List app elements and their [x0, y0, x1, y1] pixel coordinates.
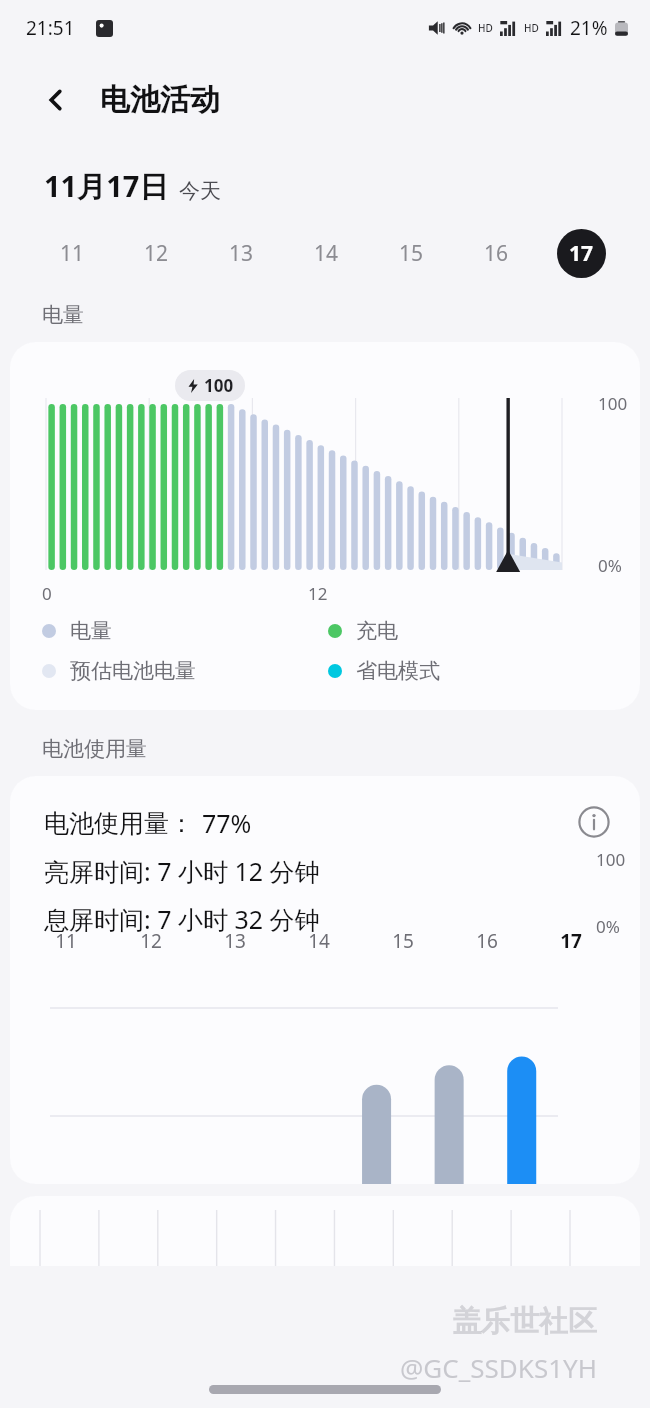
- button[interactable]: 信息: [570, 798, 618, 846]
- staticText: 电池使用量：: [44, 808, 194, 839]
- staticText: 77%: [202, 806, 252, 840]
- staticText: @GC_SSDKS1YH: [400, 1350, 598, 1385]
- staticText: 13: [229, 239, 254, 268]
- button[interactable]: 返回: [34, 78, 78, 122]
- staticText: 0%: [596, 915, 620, 938]
- staticText: 0%: [598, 554, 622, 577]
- button[interactable]: 17: [539, 226, 624, 280]
- staticText: 17: [569, 239, 594, 268]
- button[interactable]: 11: [30, 226, 114, 280]
- staticText: 11月17日: [44, 166, 169, 206]
- staticText: 今天: [179, 178, 221, 204]
- staticText: 14: [308, 928, 330, 954]
- staticText: 100: [596, 848, 626, 871]
- staticText: 电池使用量: [42, 736, 147, 762]
- staticText: 12: [140, 928, 162, 954]
- staticText: HD: [524, 21, 539, 35]
- staticText: 电池活动: [100, 81, 220, 119]
- staticText: 15: [392, 928, 414, 954]
- staticText: 充电: [356, 618, 398, 644]
- staticText: 100: [598, 392, 628, 415]
- staticText: 16: [484, 239, 509, 268]
- staticText: 盖乐世社区: [452, 1303, 597, 1340]
- staticText: 电量: [42, 302, 84, 328]
- staticText: 15: [399, 239, 424, 268]
- staticText: HD: [478, 21, 493, 35]
- staticText: 电量: [70, 618, 112, 644]
- button[interactable]: 12: [114, 226, 199, 280]
- staticText: 12: [308, 582, 328, 605]
- staticText: 预估电池电量: [70, 658, 196, 684]
- staticText: 13: [224, 928, 246, 954]
- staticText: 21:51: [26, 15, 75, 41]
- staticText: 亮屏时间: 7 小时 12 分钟: [44, 854, 320, 888]
- staticText: 16: [476, 928, 498, 954]
- staticText: 21%: [570, 15, 608, 41]
- button[interactable]: 13: [199, 226, 284, 280]
- button[interactable]: 15: [369, 226, 454, 280]
- staticText: 12: [144, 239, 169, 268]
- staticText: 17: [560, 928, 582, 954]
- staticText: 省电模式: [356, 658, 440, 684]
- staticText: 11: [55, 928, 77, 954]
- staticText: 息屏时间: 7 小时 32 分钟: [44, 902, 320, 936]
- staticText: 100: [204, 374, 234, 397]
- staticText: 0: [42, 582, 52, 605]
- button[interactable]: 16: [454, 226, 539, 280]
- button[interactable]: 14: [284, 226, 369, 280]
- staticText: 11: [60, 239, 85, 268]
- staticText: 14: [314, 239, 339, 268]
